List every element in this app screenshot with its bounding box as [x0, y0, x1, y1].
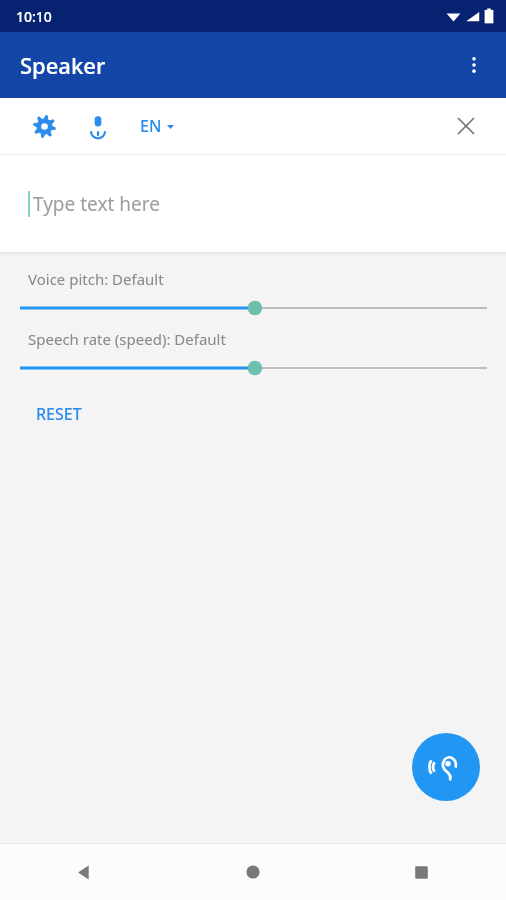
button[interactable]: EN: [134, 107, 180, 145]
button[interactable]: Back: [0, 844, 168, 900]
staticText: Speaker: [20, 50, 106, 80]
button[interactable]: Home: [168, 844, 337, 900]
button[interactable]: Voice pitch: Default: [0, 297, 506, 319]
button[interactable]: Voice input: [76, 104, 120, 148]
staticText: Voice pitch: Default: [28, 269, 164, 289]
button[interactable]: Speak: [412, 733, 480, 801]
staticText: RESET: [36, 403, 82, 425]
button[interactable]: Speech rate (speed): Default: [0, 357, 506, 379]
staticText: 10:10: [16, 7, 52, 26]
button[interactable]: Settings: [22, 104, 66, 148]
staticText: EN: [140, 115, 162, 137]
staticText: Speech rate (speed): Default: [28, 329, 226, 349]
staticText: Type text here: [33, 191, 160, 217]
button[interactable]: Recent apps: [337, 844, 506, 900]
button[interactable]: Close: [444, 104, 488, 148]
button[interactable]: More options: [450, 41, 498, 89]
button[interactable]: RESET: [22, 395, 96, 433]
button[interactable]: Type text here: [0, 155, 506, 252]
